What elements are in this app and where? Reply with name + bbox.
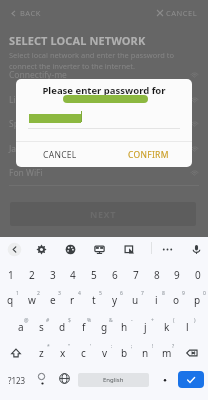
staticText: ?123: [8, 375, 26, 386]
button[interactable]: 7: [125, 263, 146, 286]
staticText: @: [24, 317, 29, 324]
button[interactable]: CANCEL: [153, 4, 202, 22]
staticText: Connectify-me: [9, 69, 67, 81]
button[interactable]: q: [0, 288, 21, 311]
button[interactable]: w: [21, 288, 42, 311]
button[interactable]: CANCEL: [16, 142, 104, 167]
staticText: 9: [182, 290, 185, 297]
button[interactable]: Change language: [54, 368, 74, 388]
staticText: z: [39, 346, 44, 360]
button[interactable]: n: [135, 341, 156, 364]
staticText: Select local network and enter the passw…: [9, 50, 174, 71]
button[interactable]: 3: [42, 263, 63, 286]
button[interactable]: b: [114, 341, 135, 364]
staticText: y: [112, 293, 118, 307]
button[interactable]: u: [125, 288, 146, 311]
button[interactable]: Linksys: [0, 87, 208, 112]
staticText: p: [194, 293, 201, 307]
button[interactable]: ?123: [3, 369, 31, 391]
button[interactable]: Speedport W724V: [0, 111, 208, 136]
button[interactable]: Back: [3, 238, 25, 260]
button[interactable]: y: [104, 288, 125, 311]
button[interactable]: h: [114, 315, 135, 338]
staticText: ': [90, 343, 92, 350]
staticText: ?: [172, 343, 175, 350]
button[interactable]: 9: [166, 263, 187, 286]
button[interactable]: s: [31, 315, 52, 338]
button[interactable]: p: [187, 288, 208, 311]
staticText: 6: [120, 290, 123, 297]
staticText: o: [173, 293, 180, 307]
button[interactable]: Backspace: [180, 341, 204, 364]
button[interactable]: Settings: [30, 238, 52, 260]
staticText: n: [142, 346, 149, 360]
staticText: ): [194, 317, 196, 324]
button[interactable]: 0: [187, 263, 208, 286]
button[interactable]: 4: [62, 263, 83, 286]
button[interactable]: l: [177, 315, 198, 338]
button[interactable]: z: [31, 341, 52, 364]
button[interactable]: BACK: [6, 4, 45, 22]
staticText: 2: [29, 268, 35, 282]
staticText: NEXT: [90, 208, 116, 220]
button[interactable]: Fon WiFi: [0, 160, 208, 185]
button[interactable]: Stickers: [88, 238, 110, 260]
button[interactable]: v: [94, 341, 115, 364]
button[interactable]: 1: [0, 263, 21, 286]
staticText: 9: [174, 268, 180, 282]
staticText: b: [121, 346, 128, 360]
staticText: %: [87, 317, 92, 324]
button[interactable]: 8: [146, 263, 167, 286]
button[interactable]: t: [83, 288, 104, 311]
button[interactable]: Connectify-me: [0, 62, 208, 87]
staticText: :: [111, 343, 113, 350]
button[interactable]: Jasmin: [0, 136, 208, 161]
button[interactable]: Voice input: [185, 238, 207, 260]
staticText: 0: [195, 268, 201, 282]
button[interactable]: CONFIRM: [104, 142, 192, 167]
staticText: 4: [70, 268, 76, 282]
staticText: *: [47, 343, 50, 350]
button[interactable]: d: [52, 315, 73, 338]
button[interactable]: Enter: [178, 371, 204, 388]
button[interactable]: e: [42, 288, 63, 311]
button[interactable]: x: [52, 341, 73, 364]
staticText: ": [68, 343, 71, 350]
button[interactable]: f: [73, 315, 94, 338]
button[interactable]: [155, 369, 175, 389]
button[interactable]: Theme: [59, 238, 81, 260]
button[interactable]: a: [10, 315, 31, 338]
staticText: k: [164, 320, 170, 334]
button[interactable]: Resize keyboard: [118, 238, 140, 260]
staticText: Fon WiFi: [9, 167, 43, 179]
button[interactable]: 2: [21, 263, 42, 286]
staticText: 0: [203, 290, 206, 297]
staticText: l: [186, 320, 189, 334]
button[interactable]: 6: [104, 263, 125, 286]
button[interactable]: g: [94, 315, 115, 338]
button[interactable]: English: [78, 373, 149, 387]
button[interactable]: 5: [83, 263, 104, 286]
staticText: SELECT LOCAL NETWORK: [9, 33, 146, 48]
staticText: -: [131, 317, 133, 324]
staticText: s: [39, 320, 44, 334]
button[interactable]: o: [166, 288, 187, 311]
button[interactable]: r: [62, 288, 83, 311]
button[interactable]: c: [73, 341, 94, 364]
button[interactable]: Emoji: [32, 369, 52, 391]
staticText: 5: [99, 290, 102, 297]
button[interactable]: Shift: [4, 341, 28, 364]
button[interactable]: k: [156, 315, 177, 338]
staticText: v: [102, 346, 108, 360]
staticText: d: [59, 320, 66, 334]
staticText: t: [92, 293, 96, 307]
button[interactable]: More options: [156, 238, 178, 260]
button[interactable]: j: [135, 315, 156, 338]
staticText: Linksys: [9, 94, 38, 106]
staticText: +: [151, 317, 154, 324]
staticText: g: [101, 320, 108, 334]
staticText: 4: [78, 290, 81, 297]
button[interactable]: i: [146, 288, 167, 311]
button[interactable]: m: [156, 341, 177, 364]
